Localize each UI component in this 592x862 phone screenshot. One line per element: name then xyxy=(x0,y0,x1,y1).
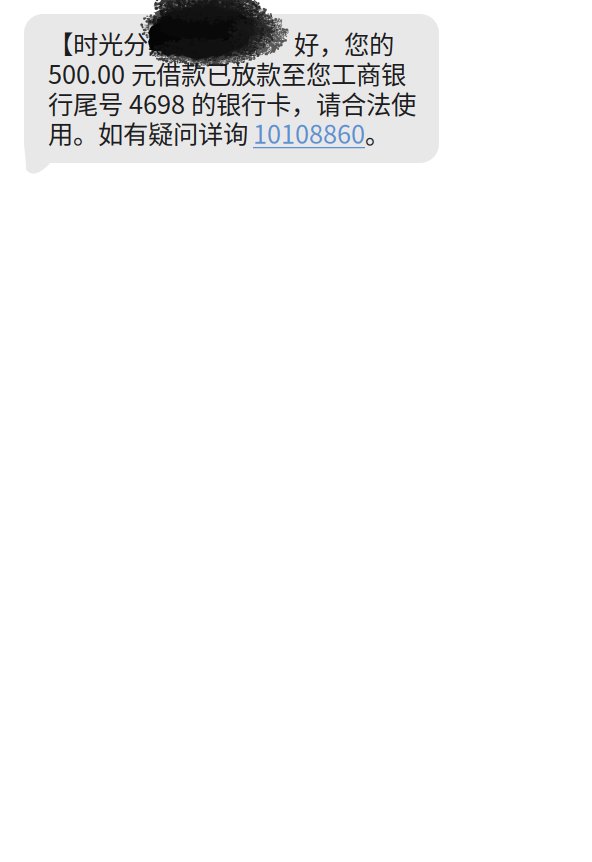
button[interactable]: 【时光分期】 好，您的 500.00 元借款已放款至您工商银行尾号 4698 的… xyxy=(24,14,439,179)
staticText: 【时光分期】 好，您的 500.00 元借款已放款至您工商银行尾号 4698 的… xyxy=(48,28,416,148)
